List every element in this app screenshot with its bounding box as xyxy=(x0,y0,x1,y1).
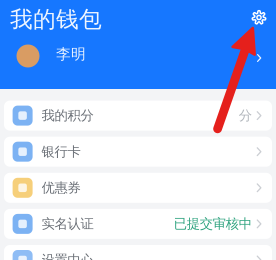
button[interactable]: 设置中心 xyxy=(4,245,272,260)
staticText: 银行卡 xyxy=(42,143,81,160)
staticText: 我的钱包 xyxy=(10,5,102,33)
staticText: 优惠券 xyxy=(42,180,81,196)
staticText: 我的积分 xyxy=(42,107,94,124)
staticText: 分 xyxy=(239,107,252,124)
staticText: 已提交审核中 xyxy=(174,216,252,232)
staticText: 实名认证 xyxy=(42,216,94,232)
button[interactable]: 我的积分 xyxy=(4,101,272,131)
button[interactable]: 优惠券 xyxy=(4,173,272,203)
staticText: 李明 xyxy=(56,45,86,63)
button[interactable]: 实名认证 xyxy=(4,209,272,239)
button[interactable]: Settings xyxy=(245,3,273,31)
button[interactable]: 李明 xyxy=(0,0,276,89)
staticText: 设置中心 xyxy=(42,252,94,260)
button[interactable]: 银行卡 xyxy=(4,137,272,167)
